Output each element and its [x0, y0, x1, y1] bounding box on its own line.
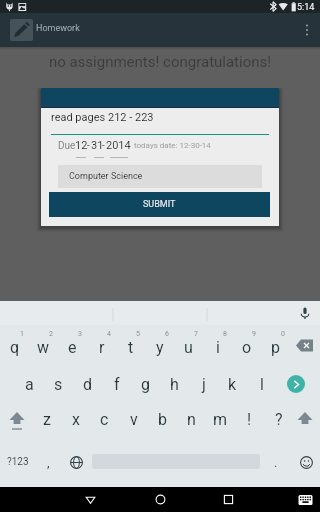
button[interactable]: n: [177, 402, 206, 437]
staticText: p: [271, 338, 280, 357]
staticText: 4: [107, 330, 111, 338]
staticText: v: [130, 410, 138, 429]
button[interactable]: More options: [294, 13, 320, 47]
button[interactable]: l: [247, 366, 276, 402]
staticText: -: [102, 140, 105, 152]
button[interactable]: h: [160, 366, 189, 402]
staticText: m: [213, 410, 228, 429]
staticText: a: [25, 375, 34, 394]
staticText: w: [37, 338, 50, 357]
staticText: ,: [47, 455, 50, 470]
button[interactable]: j: [189, 366, 218, 402]
staticText: ?123: [7, 456, 29, 468]
staticText: 1: [20, 330, 24, 338]
button[interactable]: Home: [144, 487, 176, 512]
button[interactable]: b: [148, 402, 177, 437]
button[interactable]: 2014: [106, 139, 131, 152]
button[interactable]: .: [263, 442, 289, 482]
staticText: Homework: [36, 23, 80, 34]
staticText: n: [187, 410, 196, 429]
button[interactable]: d: [73, 366, 102, 402]
button[interactable]: Enter: [276, 366, 316, 402]
staticText: i: [216, 338, 220, 357]
staticText: Computer Science: [69, 171, 143, 182]
button[interactable]: Change language: [63, 442, 89, 482]
button[interactable]: p: [261, 327, 290, 367]
staticText: 5: [136, 330, 140, 338]
button[interactable]: t: [116, 327, 145, 367]
staticText: todays date: 12-30-14: [134, 141, 211, 150]
staticText: q: [10, 338, 20, 357]
button[interactable]: Emoji: [292, 442, 320, 482]
staticText: 9: [252, 330, 256, 338]
staticText: x: [72, 410, 80, 429]
button[interactable]: Backspace: [290, 328, 320, 362]
button[interactable]: k: [218, 366, 247, 402]
staticText: no assignments! congratulations!: [0, 53, 320, 71]
staticText: y: [156, 338, 164, 357]
staticText: 8: [223, 330, 227, 338]
button[interactable]: read pages 212 - 223: [51, 111, 269, 135]
button[interactable]: !: [235, 402, 264, 437]
staticText: !: [247, 410, 252, 429]
button[interactable]: v: [119, 402, 148, 437]
staticText: c: [100, 410, 109, 429]
staticText: Due: [58, 140, 76, 152]
button[interactable]: r: [87, 327, 116, 367]
staticText: f: [114, 375, 120, 394]
button[interactable]: q: [0, 327, 29, 367]
staticText: ?: [275, 410, 283, 429]
button[interactable]: Homework app icon: [10, 19, 33, 41]
button[interactable]: Shift: [288, 402, 320, 437]
staticText: 0: [281, 330, 285, 338]
staticText: .: [274, 455, 278, 470]
button[interactable]: i: [203, 327, 232, 367]
staticText: s: [54, 375, 63, 394]
button[interactable]: 31: [91, 139, 104, 152]
staticText: z: [43, 410, 51, 429]
button[interactable]: ?: [264, 402, 293, 437]
staticText: k: [228, 375, 237, 394]
button[interactable]: Back: [74, 487, 106, 512]
button[interactable]: w: [29, 327, 58, 367]
staticText: -: [87, 140, 90, 152]
button[interactable]: Voice input: [293, 301, 317, 325]
button[interactable]: g: [131, 366, 160, 402]
button[interactable]: z: [32, 402, 61, 437]
button[interactable]: Shift: [0, 402, 34, 437]
button[interactable]: m: [206, 402, 235, 437]
button[interactable]: y: [145, 327, 174, 367]
button[interactable]: f: [102, 366, 131, 402]
staticText: j: [202, 375, 206, 394]
staticText: 6: [165, 330, 169, 338]
staticText: SUBMIT: [143, 199, 176, 210]
button[interactable]: ,: [35, 442, 61, 482]
button[interactable]: SUBMIT: [49, 192, 270, 217]
button[interactable]: ?123: [1, 442, 35, 482]
button[interactable]: a: [15, 366, 44, 402]
staticText: 5:14: [297, 2, 315, 13]
button[interactable]: e: [58, 327, 87, 367]
staticText: d: [83, 375, 93, 394]
button[interactable]: c: [90, 402, 119, 437]
staticText: b: [158, 410, 167, 429]
button[interactable]: Hide keyboard: [289, 487, 320, 512]
staticText: o: [242, 338, 252, 357]
button[interactable]: Computer Science: [58, 165, 262, 188]
button[interactable]: x: [61, 402, 90, 437]
staticText: h: [170, 375, 179, 394]
staticText: r: [99, 338, 105, 357]
button[interactable]: Recent apps: [212, 487, 244, 512]
staticText: g: [141, 375, 150, 394]
button[interactable]: 12: [75, 139, 88, 152]
button[interactable]: u: [174, 327, 203, 367]
staticText: u: [184, 338, 193, 357]
button[interactable]: o: [232, 327, 261, 367]
staticText: 3: [78, 330, 82, 338]
staticText: e: [68, 338, 77, 357]
staticText: l: [260, 375, 264, 394]
staticText: read pages 212 - 223: [51, 111, 154, 124]
button[interactable]: s: [44, 366, 73, 402]
staticText: t: [128, 338, 134, 357]
